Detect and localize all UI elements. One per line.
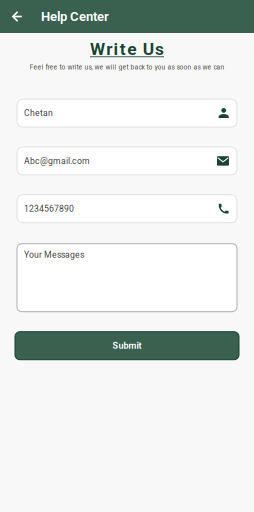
staticText: 1234567890 [24,204,74,214]
button[interactable]: 1234567890 [17,195,237,223]
staticText: Write Us [90,39,164,59]
staticText: Chetan [24,108,53,118]
staticText: Submit [112,340,141,351]
staticText: Abc@gmail.com [24,156,90,166]
staticText: Help Center [41,9,109,24]
button[interactable]: Submit [15,332,239,360]
staticText: Your Messages [24,250,84,260]
button[interactable]: Chetan [17,99,237,127]
button[interactable]: Your Messages [17,244,237,312]
button[interactable]: Abc@gmail.com [17,147,237,175]
staticText: Feel free to write us, we will get back … [29,63,224,71]
button[interactable]: Back [6,0,28,33]
